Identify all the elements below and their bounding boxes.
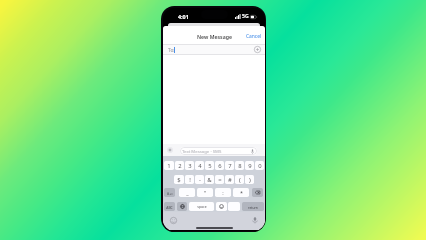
button[interactable]: 6 [215,161,224,170]
button[interactable]: Add contact [254,46,261,53]
staticText: space [197,204,207,209]
staticText: 3 [188,162,192,170]
button[interactable]: “ [197,188,213,197]
button[interactable]: 2 [175,161,184,170]
staticText: 5 [208,162,212,170]
button[interactable]: Switch keyboard [177,202,187,211]
button[interactable]: ) [245,175,254,184]
staticText: 7 [228,162,232,170]
button[interactable]: 7 [225,161,234,170]
button[interactable]: ABC [164,202,175,211]
button[interactable]: & [205,175,214,184]
button[interactable]: return [242,202,264,211]
staticText: $ [177,176,181,184]
button[interactable]: Text Message · SMS [180,147,257,155]
staticText: New Message [197,33,232,40]
staticText: To: [168,47,175,54]
staticText: #+= [167,191,173,195]
button[interactable]: ( [235,175,244,184]
button[interactable]: 9 [245,161,254,170]
button[interactable]: 8 [235,161,244,170]
staticText: “ [204,189,206,196]
staticText: Cancel [246,33,262,40]
button[interactable]: 4 [195,161,204,170]
staticText: # [228,176,232,184]
staticText: ) [249,176,251,184]
staticText: 9 [248,162,252,170]
button[interactable]: Emoji [170,217,177,224]
staticText: 2 [178,162,182,170]
staticText: 8 [238,162,242,170]
staticText: 0 [258,162,262,170]
other: Dictate [251,149,254,154]
staticText: = [218,176,222,184]
staticText: _ [186,189,189,196]
staticText: Text Message · SMS [182,148,222,154]
staticText: 5G [242,13,249,20]
button[interactable]: _ [179,188,195,197]
staticText: * [240,189,243,196]
button[interactable]: $ [174,175,184,184]
button[interactable] [228,202,240,211]
button[interactable]: = [215,175,224,184]
button[interactable]: #+= [164,188,175,197]
staticText: 4 [198,162,202,170]
button[interactable]: ! [185,175,194,184]
button[interactable]: : [215,188,231,197]
button[interactable]: 0 [255,161,264,170]
button[interactable]: Cancel [246,31,262,41]
button[interactable]: Attach [167,147,173,153]
button[interactable]: 5 [205,161,214,170]
staticText: ABC [166,205,173,209]
staticText: - [199,176,201,184]
button[interactable]: Stickers [216,202,227,211]
staticText: : [222,189,224,196]
button[interactable]: # [225,175,234,184]
button[interactable]: * [233,188,249,197]
button[interactable]: space [189,202,214,211]
staticText: 1 [167,162,171,170]
button[interactable]: Dictate [252,217,258,224]
staticText: ! [189,176,191,184]
staticText: & [207,176,212,184]
button[interactable]: 1 [164,161,174,170]
staticText: 6 [218,162,222,170]
button[interactable]: Backspace [252,188,263,197]
button[interactable]: - [195,175,204,184]
button[interactable]: 3 [185,161,194,170]
staticText: ( [239,176,241,184]
staticText: 4:01 [178,13,189,20]
staticText: return [248,205,258,209]
